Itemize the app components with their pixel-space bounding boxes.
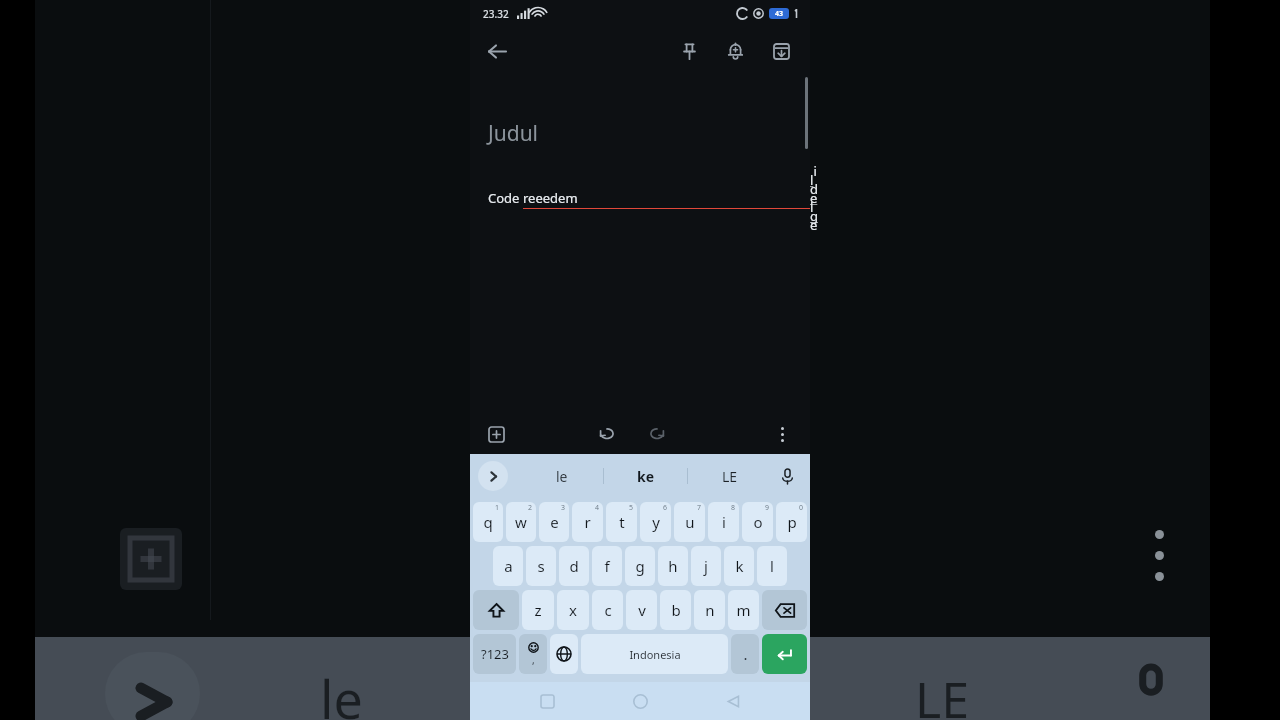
button[interactable]: q [473, 502, 503, 542]
staticText: u [685, 512, 695, 532]
button[interactable]: f [592, 546, 622, 586]
button[interactable]: e [539, 502, 569, 542]
button[interactable]: g [625, 546, 655, 586]
button[interactable]: d [559, 546, 589, 586]
staticText: k [735, 556, 744, 576]
button[interactable]: s [526, 546, 556, 586]
button[interactable]: Pin [672, 34, 706, 68]
button[interactable]: Backspace [762, 590, 807, 630]
button[interactable]: More options [768, 420, 796, 448]
staticText: 9 [765, 503, 770, 513]
staticText: 5 [629, 503, 634, 513]
staticText: f [604, 556, 610, 576]
button[interactable]: ?123 [473, 634, 516, 674]
button[interactable]: Indonesia [581, 634, 728, 674]
button[interactable]: n [694, 590, 725, 630]
staticText: g [635, 556, 645, 576]
staticText: n [705, 600, 715, 620]
staticText: 43 [775, 9, 784, 19]
button[interactable]: m [728, 590, 759, 630]
button[interactable]: Shift [473, 590, 519, 630]
staticText: 23.32 [483, 7, 509, 21]
button[interactable]: x [557, 590, 589, 630]
staticText: j [704, 556, 708, 576]
button[interactable]: Add [482, 420, 510, 448]
button[interactable]: v [626, 590, 657, 630]
staticText: v [638, 600, 646, 620]
staticText: p [787, 512, 797, 532]
staticText: x [569, 600, 577, 620]
button[interactable]: a [493, 546, 523, 586]
button[interactable]: Home [625, 686, 655, 716]
button[interactable]: ke [604, 454, 687, 498]
button[interactable]: z [522, 590, 554, 630]
button[interactable]: Back [718, 686, 748, 716]
staticText: 2 [528, 503, 533, 513]
staticText: , [532, 653, 535, 667]
staticText: m [736, 600, 751, 620]
staticText: r [584, 512, 591, 532]
staticText: b [671, 600, 681, 620]
button[interactable]: Redo [643, 420, 671, 448]
button[interactable]: Expand toolbar [478, 461, 508, 491]
staticText: t [619, 512, 625, 532]
button[interactable]: i [708, 502, 739, 542]
button[interactable]: c [592, 590, 623, 630]
button[interactable]: Reminder [718, 34, 752, 68]
button[interactable]: k [724, 546, 754, 586]
staticText: LE [915, 665, 969, 720]
staticText: d [569, 556, 579, 576]
button[interactable]: u [674, 502, 705, 542]
staticText: l [770, 556, 774, 576]
button[interactable]: b [660, 590, 691, 630]
staticText: q [483, 512, 493, 532]
staticText: ?123 [481, 645, 509, 663]
staticText: y [652, 512, 660, 532]
staticText: s [537, 556, 545, 576]
staticText: i [722, 512, 726, 532]
button[interactable]: Judul [488, 119, 539, 148]
button[interactable]: o [742, 502, 773, 542]
button[interactable]: LE [688, 454, 771, 498]
staticText: ke [637, 467, 655, 486]
staticText: c [604, 600, 612, 620]
staticText: 1 [495, 503, 500, 513]
staticText: Indonesia [629, 647, 681, 662]
button[interactable]: t [606, 502, 637, 542]
staticText: LE [722, 467, 738, 486]
button[interactable]: Enter [762, 634, 807, 674]
button[interactable]: Change language [550, 634, 578, 674]
staticText: w [515, 512, 527, 532]
staticText: Code [488, 189, 523, 207]
button[interactable]: Undo [593, 420, 621, 448]
staticText: z [534, 600, 542, 620]
staticText: h [668, 556, 678, 576]
staticText: le [556, 467, 568, 486]
button[interactable]: Voice input [773, 462, 801, 490]
staticText: 8 [731, 503, 736, 513]
button[interactable]: p [776, 502, 807, 542]
button[interactable]: . [731, 634, 759, 674]
staticText: reeedem [523, 189, 578, 207]
button[interactable]: Archive [764, 34, 798, 68]
staticText: . [743, 644, 748, 664]
staticText: a [504, 556, 513, 576]
staticText: 6 [663, 503, 668, 513]
staticText: e [550, 512, 559, 532]
button[interactable]: Emoji [519, 634, 547, 674]
staticText: 7 [697, 503, 702, 513]
button[interactable]: le [521, 454, 603, 498]
button[interactable]: j [691, 546, 721, 586]
button[interactable]: y [640, 502, 671, 542]
staticText: 0 [799, 503, 804, 513]
button[interactable]: Back [480, 34, 514, 68]
staticText: le [320, 663, 363, 720]
button[interactable]: r [572, 502, 603, 542]
button[interactable]: Recents [532, 686, 562, 716]
staticText: o [753, 512, 763, 532]
button[interactable]: l [757, 546, 787, 586]
button[interactable]: w [506, 502, 536, 542]
button[interactable]: h [658, 546, 688, 586]
staticText: 4 [595, 503, 600, 513]
staticText: 3 [561, 503, 566, 513]
